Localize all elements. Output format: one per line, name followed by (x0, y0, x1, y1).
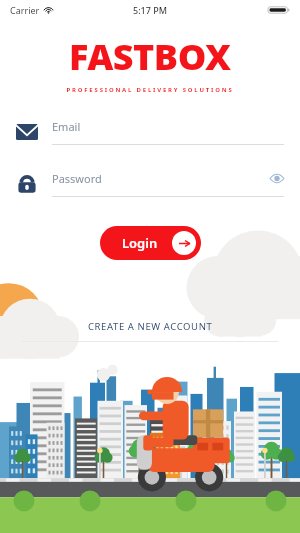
staticText: 5:17 PM (133, 4, 167, 16)
button[interactable]: CREATE A NEW ACCOUNT (0, 320, 300, 333)
staticText: CREATE A NEW ACCOUNT (88, 320, 213, 333)
button[interactable]: Password (16, 164, 284, 204)
button[interactable]: Email (16, 112, 284, 152)
staticText: Email (52, 119, 284, 134)
button[interactable]: Login (100, 226, 201, 260)
staticText: FASTBOX (69, 32, 231, 81)
staticText: Password (52, 171, 270, 186)
other: Email (16, 121, 38, 143)
staticText: PROFESSIONAL DELIVERY SOLUTIONS (66, 86, 234, 94)
button[interactable]: Show password (270, 174, 284, 183)
other: Password (16, 173, 38, 195)
staticText: Carrier (10, 4, 40, 16)
staticText: Login (122, 234, 158, 252)
